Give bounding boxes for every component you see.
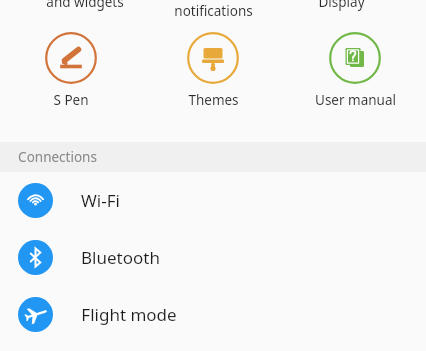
staticText: Display — [318, 0, 365, 11]
button[interactable]: Themes — [142, 26, 284, 109]
staticText: and widgets — [46, 0, 124, 11]
staticText: Wi-Fi — [81, 189, 120, 212]
button[interactable]: Bluetooth — [0, 229, 426, 286]
button[interactable]: Flight mode — [0, 286, 426, 343]
button[interactable]: S Pen — [0, 26, 142, 109]
staticText: S Pen — [53, 91, 89, 109]
button[interactable]: User manual — [284, 26, 426, 109]
staticText: notifications — [174, 2, 253, 20]
staticText: Bluetooth — [81, 246, 160, 269]
staticText: User manual — [315, 91, 396, 109]
staticText: Flight mode — [81, 303, 177, 326]
button[interactable]: Wi-Fi — [0, 172, 426, 229]
staticText: Connections — [18, 148, 97, 166]
staticText: Themes — [188, 91, 239, 109]
